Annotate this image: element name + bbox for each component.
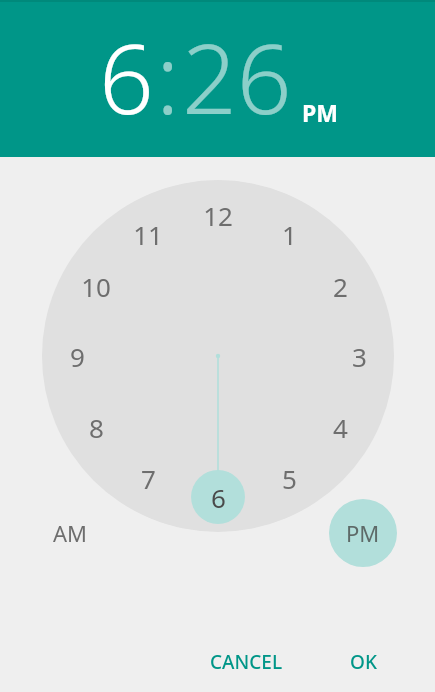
button[interactable]: OK: [336, 641, 391, 683]
staticText: 8: [89, 410, 104, 445]
staticText: 6: [211, 480, 226, 515]
staticText: OK: [350, 649, 377, 675]
staticText: 1: [282, 217, 297, 252]
button[interactable]: 10: [74, 264, 118, 308]
staticText: 2: [333, 269, 348, 304]
button[interactable]: 1: [267, 212, 311, 256]
staticText: 26: [182, 11, 292, 142]
button[interactable]: PM: [294, 97, 338, 142]
staticText: AM: [53, 518, 88, 548]
button[interactable]: 11: [126, 212, 170, 256]
staticText: 4: [333, 410, 348, 445]
staticText: PM: [346, 518, 380, 548]
staticText: 6: [99, 11, 154, 142]
staticText: PM: [302, 97, 338, 128]
staticText: 11: [133, 217, 163, 252]
button[interactable]: 5: [267, 456, 311, 500]
staticText: 5: [282, 461, 297, 496]
button[interactable]: 9: [55, 334, 99, 378]
staticText: 12: [203, 198, 233, 233]
button[interactable]: 6: [97, 11, 156, 142]
button[interactable]: 7: [126, 456, 170, 500]
button[interactable]: 8: [74, 405, 118, 449]
button[interactable]: 26: [180, 11, 294, 142]
staticText: 3: [352, 339, 367, 374]
button[interactable]: 2: [318, 264, 362, 308]
button[interactable]: PM: [329, 499, 397, 567]
staticText: 9: [70, 339, 85, 374]
staticText: CANCEL: [210, 649, 283, 675]
button[interactable]: 3: [337, 334, 381, 378]
button[interactable]: 6: [196, 475, 240, 519]
staticText: 10: [81, 269, 111, 304]
button[interactable]: AM: [36, 499, 104, 567]
button[interactable]: 12: [196, 193, 240, 237]
button[interactable]: CANCEL: [196, 641, 297, 683]
staticText: 7: [141, 461, 156, 496]
button[interactable]: 4: [318, 405, 362, 449]
staticText: :: [156, 11, 180, 142]
